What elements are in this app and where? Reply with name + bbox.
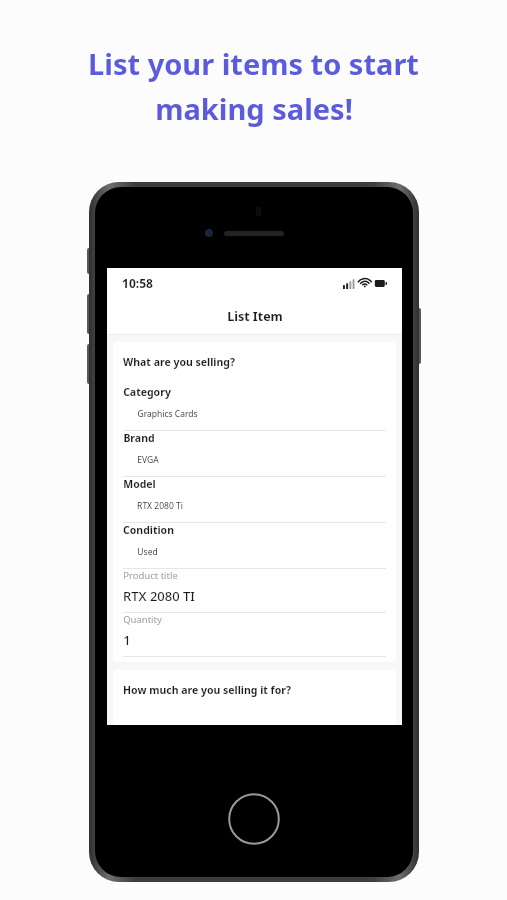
button[interactable]: Quantity — [113, 613, 396, 656]
staticText: List Item — [227, 308, 283, 325]
staticText: Graphics Cards — [137, 408, 198, 420]
button[interactable]: Product title — [113, 569, 396, 612]
staticText: Model — [123, 477, 156, 491]
staticText: Quantity — [123, 613, 162, 626]
button[interactable]: Condition — [113, 523, 396, 568]
staticText: How much are you selling it for? — [123, 683, 291, 697]
staticText: making sales! — [155, 89, 353, 128]
staticText: What are you selling? — [123, 355, 235, 369]
staticText: RTX 2080 Ti — [137, 500, 183, 512]
staticText: Condition — [123, 523, 174, 537]
staticText: 1 — [123, 631, 131, 649]
button[interactable]: Home — [228, 793, 280, 845]
staticText: Brand — [123, 431, 155, 445]
staticText: Category — [123, 385, 171, 399]
staticText: List your items to start — [88, 44, 419, 83]
button[interactable]: Brand — [113, 431, 396, 476]
staticText: EVGA — [137, 454, 159, 466]
staticText: RTX 2080 TI — [123, 587, 195, 605]
button[interactable]: Category — [113, 385, 396, 430]
staticText: Product title — [123, 569, 178, 582]
staticText: Used — [137, 546, 158, 558]
staticText: 10:58 — [122, 275, 153, 291]
button[interactable]: Model — [113, 477, 396, 522]
